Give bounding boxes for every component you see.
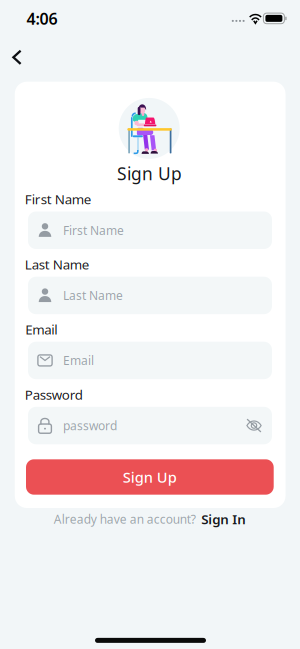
staticText: Last Name	[63, 287, 123, 303]
staticText: Email	[25, 320, 57, 338]
staticText: Last Name	[25, 255, 90, 273]
button[interactable]: Show password	[236, 408, 272, 443]
staticText: password	[63, 418, 117, 433]
staticText: First Name	[25, 190, 92, 208]
staticText: First Name	[63, 222, 124, 238]
staticText: Password	[25, 386, 83, 403]
button[interactable]: Sign In	[201, 510, 246, 528]
staticText: Already have an account?	[54, 511, 196, 527]
button[interactable]: Back	[2, 42, 32, 72]
staticText: Sign Up	[117, 162, 182, 185]
staticText: 4:06	[26, 8, 57, 29]
staticText: Email	[63, 352, 94, 368]
button[interactable]: Sign Up	[26, 459, 274, 495]
staticText: Sign In	[201, 510, 246, 528]
staticText: Sign Up	[123, 467, 177, 487]
